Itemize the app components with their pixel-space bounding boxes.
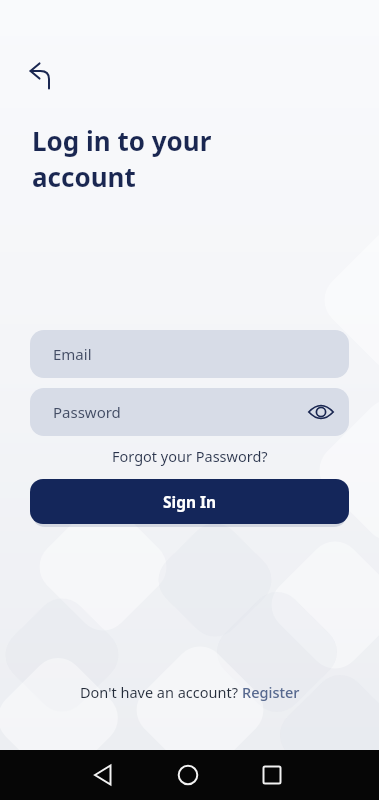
button[interactable] — [301, 388, 349, 436]
staticText: Sign In — [163, 491, 217, 512]
button[interactable]: Sign In — [30, 479, 349, 524]
staticText: Password — [53, 402, 121, 422]
staticText: Log in to your account — [32, 123, 212, 195]
button[interactable] — [252, 755, 292, 795]
staticText: Email — [53, 344, 92, 364]
button[interactable]: Password — [30, 388, 349, 436]
button[interactable] — [24, 58, 64, 98]
button[interactable] — [85, 755, 125, 795]
button[interactable]: Email — [30, 330, 349, 378]
button[interactable]: Don't have an account? — [0, 682, 379, 702]
staticText: Register — [242, 682, 300, 702]
staticText: Don't have an account? — [80, 682, 242, 702]
button[interactable]: Forgot your Password? — [0, 446, 379, 466]
button[interactable] — [168, 755, 208, 795]
staticText: Forgot your Password? — [112, 446, 268, 466]
